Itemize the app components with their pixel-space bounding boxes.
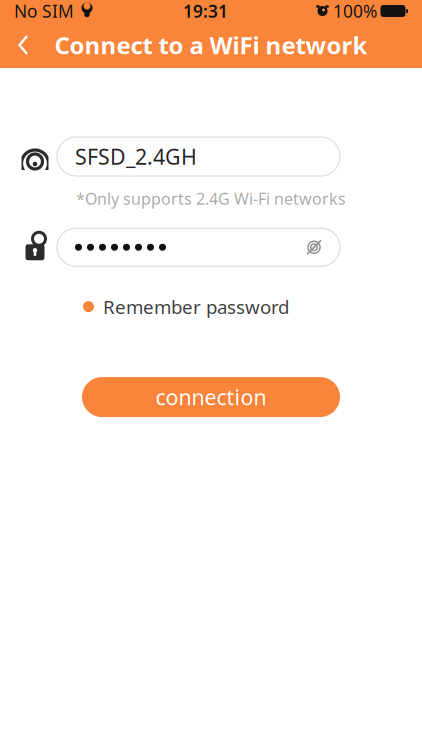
staticText: No SIM [14, 0, 74, 22]
button[interactable]: Back [0, 23, 46, 67]
staticText: 19:31 [183, 0, 228, 22]
staticText: connection [155, 383, 266, 411]
staticText: Connect to a WiFi network [54, 29, 367, 61]
button[interactable]: SFSD_2.4GH [57, 137, 340, 176]
staticText: *Only supports 2.4G Wi-Fi networks [76, 188, 346, 209]
button[interactable]: connection [82, 377, 340, 417]
staticText: Remember password [103, 294, 289, 319]
button[interactable] [57, 228, 340, 266]
staticText: SFSD_2.4GH [75, 142, 197, 171]
button[interactable]: Remember password [83, 288, 289, 325]
staticText: 100% [333, 0, 377, 22]
